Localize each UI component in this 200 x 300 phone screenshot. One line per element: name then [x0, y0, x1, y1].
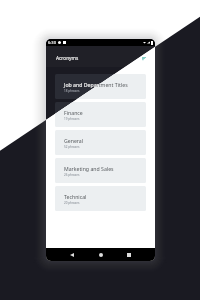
staticText: General	[64, 137, 84, 144]
staticText: General	[64, 137, 84, 144]
button[interactable]: Job and Department Titles	[55, 74, 146, 99]
staticText: 6:30	[48, 40, 56, 45]
button[interactable]: Sort	[140, 55, 147, 62]
staticText: Technical	[64, 193, 87, 200]
staticText: 52 phrases	[64, 145, 80, 149]
button[interactable]: Recents	[125, 251, 133, 259]
button[interactable]: Back	[68, 251, 76, 259]
button[interactable]: Home	[97, 251, 105, 259]
staticText: 26 phrases	[64, 173, 80, 177]
staticText: 52 phrases	[64, 145, 80, 149]
button[interactable]: Finance	[55, 102, 146, 127]
staticText: Finance	[64, 109, 83, 116]
button[interactable]: Home	[97, 251, 105, 259]
staticText: Finance	[64, 109, 83, 116]
button[interactable]: Marketing and Sales	[55, 158, 146, 183]
button[interactable]: Back	[68, 251, 76, 259]
button[interactable]: Technical	[55, 186, 146, 211]
staticText: Technical	[64, 193, 87, 200]
button[interactable]: Marketing and Sales	[55, 158, 146, 183]
staticText: Acronyms	[56, 55, 79, 62]
staticText: Marketing and Sales	[64, 165, 114, 172]
staticText: 20 phrases	[64, 201, 80, 205]
button[interactable]: Finance	[55, 102, 146, 127]
staticText: Job and Department Titles	[64, 81, 128, 88]
button[interactable]: Sort	[140, 55, 147, 62]
staticText: 6:30	[48, 40, 56, 45]
staticText: 20 phrases	[64, 201, 80, 205]
staticText: Acronyms	[56, 55, 79, 62]
staticText: 19 phrases	[64, 117, 80, 121]
button[interactable]: Job and Department Titles	[55, 74, 146, 99]
button[interactable]: Technical	[55, 186, 146, 211]
staticText: 18 phrases	[64, 89, 80, 93]
staticText: Job and Department Titles	[64, 81, 128, 88]
button[interactable]: Recents	[125, 251, 133, 259]
staticText: Marketing and Sales	[64, 165, 114, 172]
button[interactable]: General	[55, 130, 146, 155]
staticText: 19 phrases	[64, 117, 80, 121]
staticText: 18 phrases	[64, 89, 80, 93]
button[interactable]: General	[55, 130, 146, 155]
staticText: 26 phrases	[64, 173, 80, 177]
